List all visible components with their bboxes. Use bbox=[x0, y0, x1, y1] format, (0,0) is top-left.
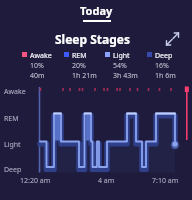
button[interactable]: Deep bbox=[147, 51, 176, 81]
button[interactable]: Light bbox=[105, 51, 138, 81]
button[interactable]: REM bbox=[64, 51, 97, 81]
staticText: 54% bbox=[113, 61, 127, 71]
staticText: 10% bbox=[30, 61, 44, 71]
button[interactable]: Today bbox=[80, 0, 113, 22]
staticText: 1h 21m bbox=[72, 71, 97, 81]
staticText: Deep bbox=[155, 51, 173, 61]
staticText: 7:10 am bbox=[152, 176, 179, 186]
button[interactable]: Awake bbox=[22, 51, 52, 81]
staticText: 3h 43m bbox=[113, 71, 138, 81]
staticText: REM bbox=[4, 114, 19, 124]
staticText: 1h 6m bbox=[155, 71, 176, 81]
staticText: 12:20 am bbox=[20, 176, 51, 186]
staticText: Deep bbox=[4, 165, 22, 175]
staticText: Light bbox=[4, 140, 21, 150]
button[interactable] bbox=[162, 28, 184, 50]
staticText: Awake bbox=[4, 87, 26, 97]
staticText: Sleep Stages bbox=[55, 31, 131, 47]
staticText: Today bbox=[80, 3, 113, 18]
staticText: 20% bbox=[72, 61, 86, 71]
staticText: Light bbox=[113, 51, 130, 61]
staticText: 16% bbox=[155, 61, 169, 71]
staticText: 40m bbox=[30, 71, 45, 81]
staticText: 4 am bbox=[98, 176, 115, 186]
staticText: REM bbox=[72, 51, 87, 61]
staticText: Awake bbox=[30, 51, 52, 61]
